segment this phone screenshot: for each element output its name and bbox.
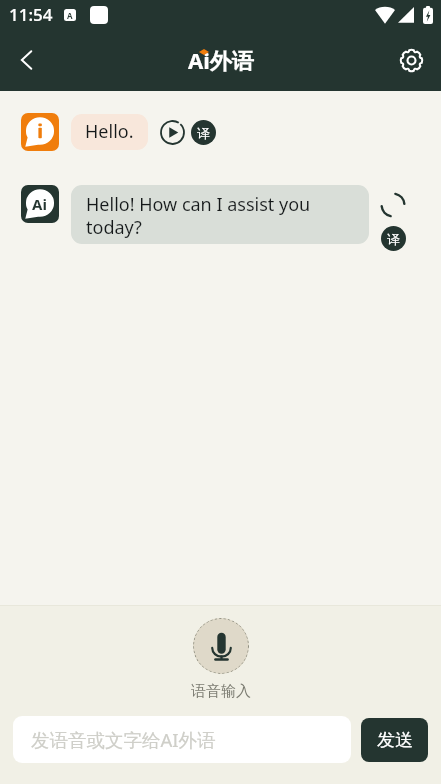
staticText: A: [67, 10, 73, 21]
staticText: Hello! How can I assist you today?: [86, 192, 354, 239]
button[interactable]: Translate: [191, 120, 216, 145]
button[interactable]: Hello! How can I assist you today?: [71, 185, 369, 244]
button[interactable]: Translate: [381, 226, 406, 251]
button[interactable]: AI avatar: [21, 185, 59, 223]
staticText: 11:54: [9, 3, 53, 26]
staticText: 译: [197, 125, 210, 141]
button[interactable]: Settings: [390, 39, 432, 81]
staticText: 语音输入: [191, 682, 251, 701]
button[interactable]: User avatar: [21, 113, 59, 151]
staticText: 发送: [377, 729, 413, 752]
button[interactable]: Back: [6, 38, 50, 82]
staticText: Hello.: [85, 119, 134, 144]
staticText: Ai: [32, 194, 47, 214]
button[interactable]: 发送: [361, 718, 428, 762]
button[interactable]: 语音输入: [191, 618, 251, 701]
staticText: Ai外语: [188, 45, 254, 75]
button[interactable]: Hello.: [71, 114, 148, 150]
button[interactable]: Play audio: [159, 119, 185, 145]
staticText: 译: [387, 231, 400, 247]
button[interactable]: 发语音或文字给AI外语: [13, 716, 351, 763]
staticText: 发语音或文字给AI外语: [31, 727, 216, 752]
